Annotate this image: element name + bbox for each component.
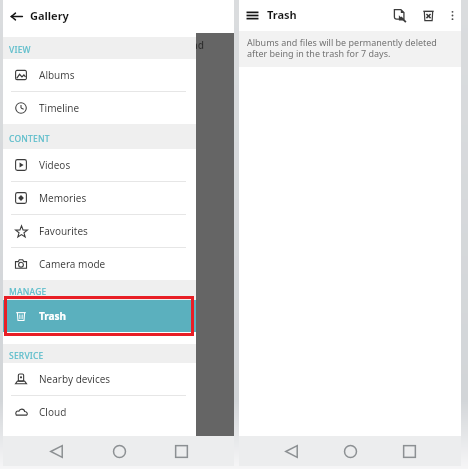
staticText: Albums and files will be permanently del… (247, 36, 437, 59)
staticText: SERVICE (9, 350, 44, 362)
staticText: Timeline (39, 101, 80, 115)
button[interactable]: More options (443, 0, 461, 31)
staticText: VIEW (9, 44, 31, 56)
button[interactable]: Cloud (3, 396, 196, 428)
button[interactable]: Navigate up (3, 0, 30, 33)
staticText: Gallery (30, 8, 69, 23)
button[interactable]: Home (321, 436, 380, 466)
button[interactable]: Delete permanently (415, 0, 441, 31)
staticText: Memories (39, 191, 87, 205)
button[interactable]: Memories (3, 182, 196, 214)
staticText: Nearby devices (39, 372, 111, 386)
button[interactable]: Open navigation drawer (239, 0, 265, 31)
staticText: Cloud (39, 405, 67, 419)
button[interactable]: Timeline (3, 92, 196, 124)
button[interactable]: Home (88, 436, 150, 466)
staticText: Camera mode (39, 257, 106, 271)
staticText: CONTENT (9, 133, 50, 145)
staticText: Videos (39, 158, 71, 172)
staticText: MANAGE (9, 286, 47, 298)
staticText: Trash (39, 309, 67, 323)
button[interactable]: Camera mode (3, 248, 196, 280)
button[interactable]: Albums (3, 59, 196, 91)
button[interactable]: Recent apps (380, 436, 439, 466)
button[interactable]: Back (261, 436, 321, 466)
button[interactable]: Trash (3, 300, 196, 332)
button[interactable]: Videos (3, 149, 196, 181)
staticText: Albums (39, 68, 75, 82)
button[interactable]: Favourites (3, 215, 196, 247)
button[interactable]: Recent apps (150, 436, 212, 466)
button[interactable]: Back (25, 436, 88, 466)
button[interactable]: Nearby devices (3, 363, 196, 395)
staticText: Favourites (39, 224, 88, 238)
button[interactable]: Restore (387, 0, 413, 31)
staticText: ad (192, 38, 204, 52)
staticText: Trash (267, 7, 297, 22)
